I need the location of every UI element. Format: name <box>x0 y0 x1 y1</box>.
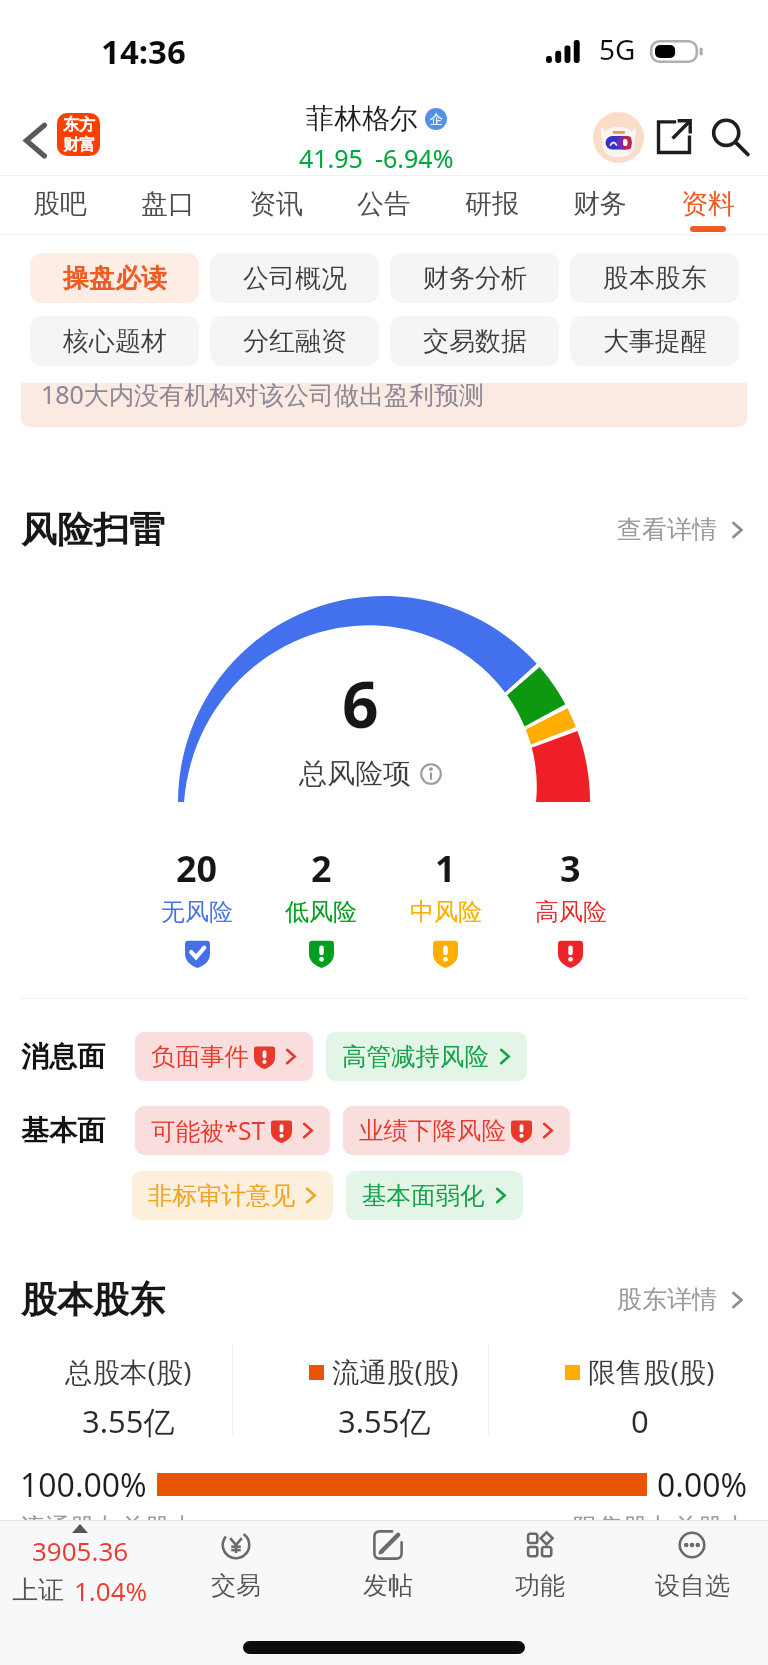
button[interactable]: 基本面弱化 <box>346 1171 523 1220</box>
staticText: 总风险项 <box>299 756 411 791</box>
staticText: 流通股(股) <box>332 1353 459 1391</box>
button[interactable]: 查看详情 <box>617 514 747 545</box>
button[interactable]: 1 <box>383 844 508 968</box>
staticText: 非标审计意见 <box>148 1180 295 1211</box>
button[interactable]: 业绩下降风险 <box>343 1106 570 1155</box>
button[interactable]: 设自选 <box>616 1521 768 1601</box>
staticText: 负面事件 <box>151 1041 249 1072</box>
button[interactable]: 财务分析 <box>390 253 559 303</box>
button[interactable]: Back <box>6 112 58 156</box>
button[interactable]: 股本股东 <box>570 253 739 303</box>
button[interactable]: 股吧 <box>6 175 114 235</box>
button[interactable]: 20 <box>135 844 259 968</box>
staticText: 0 <box>631 1400 649 1442</box>
staticText: 交易 <box>211 1570 261 1601</box>
button[interactable]: 操盘必读 <box>30 253 199 303</box>
staticText: 中风险 <box>410 897 482 927</box>
button[interactable]: 分红融资 <box>210 316 379 366</box>
button[interactable]: 180大内没有机构对该公司做出盈利预测 <box>21 383 747 427</box>
staticText: 5G <box>599 30 636 68</box>
staticText: 流通股占总股本 <box>20 1512 195 1543</box>
staticText: 1 <box>435 844 456 893</box>
staticText: 基本面 <box>21 1113 105 1148</box>
button[interactable]: 核心题材 <box>30 316 199 366</box>
staticText: 3.55亿 <box>82 1400 175 1442</box>
button[interactable]: East Money home <box>57 113 100 156</box>
button[interactable]: 研报 <box>438 175 546 235</box>
staticText: 41.95 <box>299 141 363 175</box>
button[interactable]: 可能被*ST <box>135 1106 330 1155</box>
staticText: 盘口 <box>141 187 195 221</box>
staticText: 风险扫雷 <box>21 507 165 552</box>
staticText: -6.94% <box>375 141 454 175</box>
button[interactable]: 3 <box>508 844 633 968</box>
button[interactable]: 负面事件 <box>135 1032 313 1081</box>
button[interactable]: 交易数据 <box>390 316 559 366</box>
button[interactable]: 发帖 <box>312 1521 464 1601</box>
staticText: 0.00% <box>657 1463 748 1497</box>
staticText: 基本面弱化 <box>362 1180 485 1211</box>
button[interactable]: 2 <box>259 844 383 968</box>
staticText: 业绩下降风险 <box>359 1115 506 1146</box>
button[interactable]: 资料 <box>654 175 762 235</box>
staticText: 无风险 <box>161 897 233 927</box>
staticText: 功能 <box>515 1570 565 1601</box>
staticText: 180大内没有机构对该公司做出盈利预测 <box>41 383 484 411</box>
staticText: 限售股占总股本 <box>573 1512 748 1543</box>
button[interactable]: 交易 <box>160 1521 312 1601</box>
staticText: 设自选 <box>655 1570 730 1601</box>
button[interactable]: 高管减持风险 <box>326 1032 527 1081</box>
staticText: 总股本(股) <box>65 1353 192 1391</box>
staticText: 限售股(股) <box>588 1353 715 1391</box>
staticText: 公司概况 <box>243 262 347 295</box>
button[interactable]: 非标审计意见 <box>132 1171 333 1220</box>
button[interactable]: AI assistant <box>590 109 646 165</box>
staticText: 14:36 <box>101 29 186 74</box>
button[interactable]: 公告 <box>330 175 438 235</box>
button[interactable]: Share <box>646 109 702 165</box>
staticText: 3 <box>560 844 581 893</box>
staticText: 上证 <box>12 1574 64 1607</box>
staticText: 股东详情 <box>617 1284 717 1315</box>
staticText: 操盘必读 <box>63 262 167 295</box>
staticText: 3.55亿 <box>338 1400 431 1442</box>
button[interactable]: 财务 <box>546 175 654 235</box>
staticText: 研报 <box>465 187 519 221</box>
staticText: 查看详情 <box>617 514 717 545</box>
staticText: 可能被*ST <box>151 1114 266 1147</box>
staticText: 低风险 <box>285 897 357 927</box>
staticText: 100.00% <box>20 1463 147 1497</box>
staticText: 股本股东 <box>603 262 707 295</box>
staticText: 3905.36 <box>32 1533 129 1568</box>
staticText: 1.04% <box>74 1573 148 1608</box>
button[interactable]: 盘口 <box>114 175 222 235</box>
staticText: 2 <box>311 844 332 893</box>
staticText: 分红融资 <box>243 325 347 358</box>
staticText: 财富 <box>63 135 95 155</box>
staticText: 大事提醒 <box>603 325 707 358</box>
button[interactable]: 股东详情 <box>617 1284 747 1315</box>
staticText: 股吧 <box>33 187 87 221</box>
staticText: 东方 <box>63 115 95 135</box>
button[interactable]: Search <box>702 109 758 165</box>
staticText: 财务 <box>573 187 627 221</box>
staticText: 高管减持风险 <box>342 1041 489 1072</box>
staticText: 公告 <box>357 187 411 221</box>
staticText: 核心题材 <box>63 325 167 358</box>
staticText: 20 <box>176 844 218 893</box>
button[interactable]: 公司概况 <box>210 253 379 303</box>
staticText: 高风险 <box>535 897 607 927</box>
button[interactable]: 功能 <box>464 1521 616 1601</box>
staticText: 消息面 <box>21 1039 105 1074</box>
staticText: 6 <box>342 660 379 747</box>
staticText: 资料 <box>681 187 735 221</box>
staticText: 交易数据 <box>423 325 527 358</box>
button[interactable]: 资讯 <box>222 175 330 235</box>
button[interactable]: 3905.36 <box>0 1521 160 1608</box>
staticText: 企 <box>430 111 443 127</box>
staticText: 股本股东 <box>21 1277 165 1322</box>
button[interactable]: 大事提醒 <box>570 316 739 366</box>
staticText: 资讯 <box>249 187 303 221</box>
staticText: 发帖 <box>363 1570 413 1601</box>
staticText: 财务分析 <box>423 262 527 295</box>
